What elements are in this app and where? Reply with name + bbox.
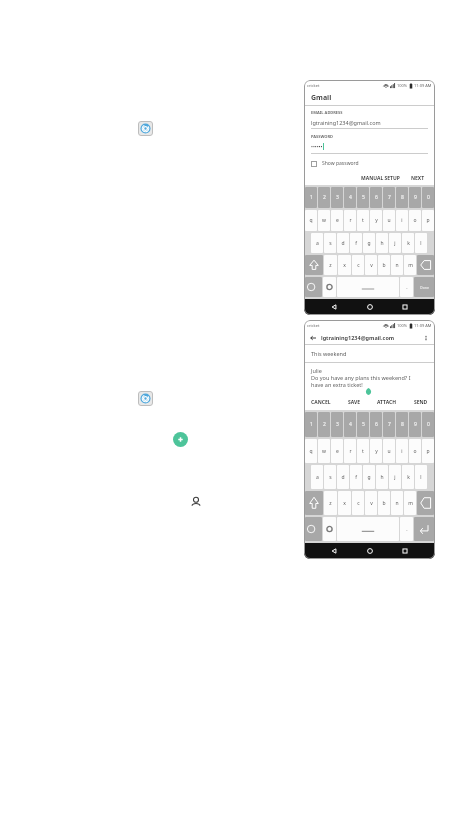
button[interactable]: v [365, 255, 377, 275]
button[interactable]: 9 [409, 187, 421, 208]
button[interactable]: y [370, 210, 382, 231]
button[interactable]: 0 [422, 187, 434, 208]
button[interactable]: 4 [344, 412, 356, 437]
button[interactable]: q [305, 439, 317, 463]
button[interactable]: j [389, 233, 401, 253]
button[interactable]: z [324, 491, 337, 515]
button[interactable]: 0 [422, 412, 434, 437]
button[interactable]: 1 [305, 412, 317, 437]
button[interactable]: 7 [383, 187, 395, 208]
button[interactable]: x [338, 255, 351, 275]
button[interactable]: Settings [323, 277, 336, 297]
button[interactable]: h [376, 233, 388, 253]
button[interactable]: g [363, 465, 375, 489]
button[interactable]: z [324, 255, 337, 275]
button[interactable]: o [409, 439, 421, 463]
button[interactable]: Back [328, 545, 340, 557]
button[interactable]: Home [364, 545, 376, 557]
button[interactable]: 6 [370, 187, 382, 208]
button[interactable]: n [391, 255, 403, 275]
button[interactable]: 4 [344, 187, 356, 208]
button[interactable]: i [396, 210, 408, 231]
button[interactable]: a [311, 465, 323, 489]
button[interactable]: 1 [305, 187, 317, 208]
button[interactable]: 5 [357, 412, 369, 437]
button[interactable]: ATTACH [376, 397, 398, 408]
button[interactable]: p [422, 439, 434, 463]
button[interactable]: g [363, 233, 375, 253]
button[interactable]: 5 [357, 187, 369, 208]
button[interactable]: 8 [396, 187, 408, 208]
button[interactable]: f [350, 465, 362, 489]
button[interactable]: Space [337, 517, 399, 541]
button[interactable]: c [352, 255, 364, 275]
button[interactable]: Backspace [417, 255, 434, 275]
button[interactable]: k [402, 233, 414, 253]
button[interactable]: q [305, 210, 317, 231]
button[interactable]: 7 [383, 412, 395, 437]
button[interactable]: Recents [399, 545, 411, 557]
button[interactable]: 2 [318, 412, 330, 437]
button[interactable]: v [365, 491, 377, 515]
button[interactable]: i [396, 439, 408, 463]
button[interactable]: f [350, 233, 362, 253]
button[interactable]: b [378, 491, 390, 515]
button[interactable]: Contact [188, 494, 203, 509]
button[interactable]: 3 [331, 412, 343, 437]
button[interactable]: u [383, 439, 395, 463]
button[interactable]: w [318, 439, 330, 463]
button[interactable]: x [338, 491, 351, 515]
button[interactable]: Space [337, 277, 399, 297]
button[interactable]: h [376, 465, 388, 489]
button[interactable]: s [324, 465, 336, 489]
button[interactable]: e [331, 439, 343, 463]
button[interactable]: d [337, 465, 349, 489]
button[interactable]: Symbols [305, 277, 322, 297]
button[interactable]: n [391, 491, 403, 515]
button[interactable]: Back [328, 301, 340, 313]
button[interactable]: CANCEL [310, 397, 332, 408]
button[interactable]: Email [138, 391, 153, 406]
button[interactable]: t [357, 439, 369, 463]
button[interactable]: SAVE [347, 397, 362, 408]
button[interactable]: m [404, 491, 416, 515]
button[interactable]: Enter [414, 517, 434, 541]
button[interactable]: k [402, 465, 414, 489]
button[interactable]: 3 [331, 187, 343, 208]
button[interactable]: Shift [305, 491, 323, 515]
button[interactable]: l [415, 465, 427, 489]
button[interactable]: r [344, 439, 356, 463]
button[interactable]: c [352, 491, 364, 515]
button[interactable]: o [409, 210, 421, 231]
button[interactable]: Shift [305, 255, 323, 275]
button[interactable]: Show password [311, 160, 359, 167]
button[interactable]: j [389, 465, 401, 489]
button[interactable]: Home [364, 301, 376, 313]
button[interactable]: w [318, 210, 330, 231]
button[interactable]: m [404, 255, 416, 275]
button[interactable]: Backspace [417, 491, 434, 515]
button[interactable]: l [415, 233, 427, 253]
button[interactable]: 8 [396, 412, 408, 437]
button[interactable]: More options [422, 334, 430, 342]
button[interactable]: r [344, 210, 356, 231]
button[interactable]: Symbols [305, 517, 322, 541]
button[interactable]: 6 [370, 412, 382, 437]
button[interactable]: 2 [318, 187, 330, 208]
button[interactable]: u [383, 210, 395, 231]
button[interactable]: Compose [173, 432, 188, 447]
button[interactable]: 9 [409, 412, 421, 437]
button[interactable]: s [324, 233, 336, 253]
button[interactable]: Settings [323, 517, 336, 541]
button[interactable]: SEND [413, 397, 429, 408]
button[interactable]: a [311, 233, 323, 253]
button[interactable]: MANUAL SETUP [358, 172, 403, 185]
button[interactable]: Back [309, 334, 317, 342]
button[interactable]: y [370, 439, 382, 463]
button[interactable]: d [337, 233, 349, 253]
button[interactable]: t [357, 210, 369, 231]
button[interactable]: b [378, 255, 390, 275]
button[interactable]: NEXT [408, 172, 428, 185]
